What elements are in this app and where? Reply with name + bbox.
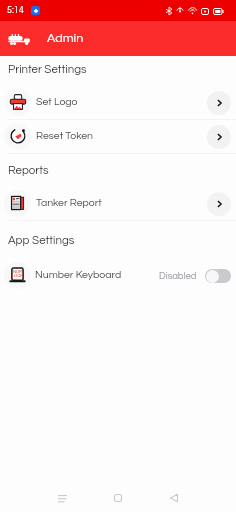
staticText: LOCK xyxy=(12,274,23,278)
button[interactable]: Set Logo xyxy=(0,86,236,119)
button[interactable]: Back xyxy=(158,484,190,512)
staticText: Reset Token xyxy=(36,130,93,141)
button[interactable]: Tanker Report xyxy=(0,187,236,220)
staticText: App Settings xyxy=(8,235,75,247)
button[interactable]: Reset Token xyxy=(0,120,236,153)
button[interactable]: Home xyxy=(102,484,134,512)
staticText: Number Keyboard xyxy=(35,269,122,280)
staticText: Disabled xyxy=(159,271,197,281)
staticText: Tanker Report xyxy=(36,197,102,208)
button[interactable]: NUM xyxy=(0,259,236,292)
staticText: NUM xyxy=(13,270,23,274)
staticText: 5:14 xyxy=(7,6,24,15)
staticText: Admin xyxy=(47,32,84,45)
staticText: Reports xyxy=(8,165,49,177)
staticText: Printer Settings xyxy=(8,64,87,76)
staticText: Set Logo xyxy=(36,96,78,107)
button[interactable]: Recent apps xyxy=(46,484,78,512)
button[interactable]: Tanker logo xyxy=(4,24,34,54)
